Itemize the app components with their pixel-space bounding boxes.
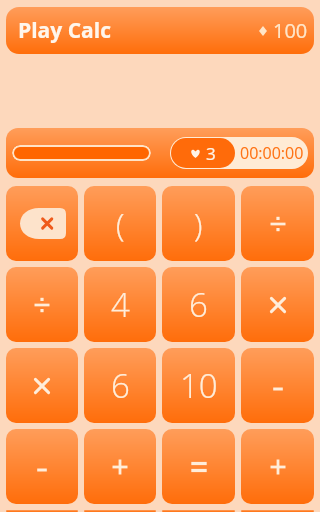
staticText: 6: [111, 363, 130, 408]
button[interactable]: [6, 186, 78, 261]
button[interactable]: 3: [171, 138, 235, 168]
staticText: ): [194, 203, 203, 245]
button[interactable]: [162, 429, 235, 504]
staticText: 10: [180, 363, 218, 408]
button[interactable]: [6, 267, 78, 342]
staticText: 8: [111, 510, 129, 512]
staticText: 00:00:00: [240, 142, 304, 164]
button[interactable]: 6: [162, 267, 235, 342]
button[interactable]: [6, 348, 78, 423]
button[interactable]: [6, 429, 78, 504]
button[interactable]: Play Calc: [6, 7, 314, 54]
staticText: 100: [273, 17, 308, 44]
staticText: 3: [206, 142, 216, 165]
button[interactable]: [241, 429, 314, 504]
button[interactable]: [241, 348, 314, 423]
button[interactable]: 10: [162, 348, 235, 423]
staticText: (: [116, 203, 125, 245]
button[interactable]: (: [84, 186, 156, 261]
button[interactable]: 9: [162, 510, 235, 512]
staticText: 4: [111, 282, 130, 327]
button[interactable]: 8: [84, 510, 156, 512]
button[interactable]: [241, 267, 314, 342]
button[interactable]: [84, 429, 156, 504]
staticText: Play Calc: [18, 16, 111, 45]
button[interactable]: 0: [241, 510, 314, 512]
button[interactable]: [241, 186, 314, 261]
button[interactable]: ): [162, 186, 235, 261]
staticText: 7: [33, 510, 51, 512]
staticText: 0: [269, 510, 287, 512]
button[interactable]: 6: [84, 348, 156, 423]
button[interactable]: 7: [6, 510, 78, 512]
button[interactable]: 4: [84, 267, 156, 342]
staticText: 9: [190, 510, 208, 512]
staticText: 6: [189, 282, 208, 327]
